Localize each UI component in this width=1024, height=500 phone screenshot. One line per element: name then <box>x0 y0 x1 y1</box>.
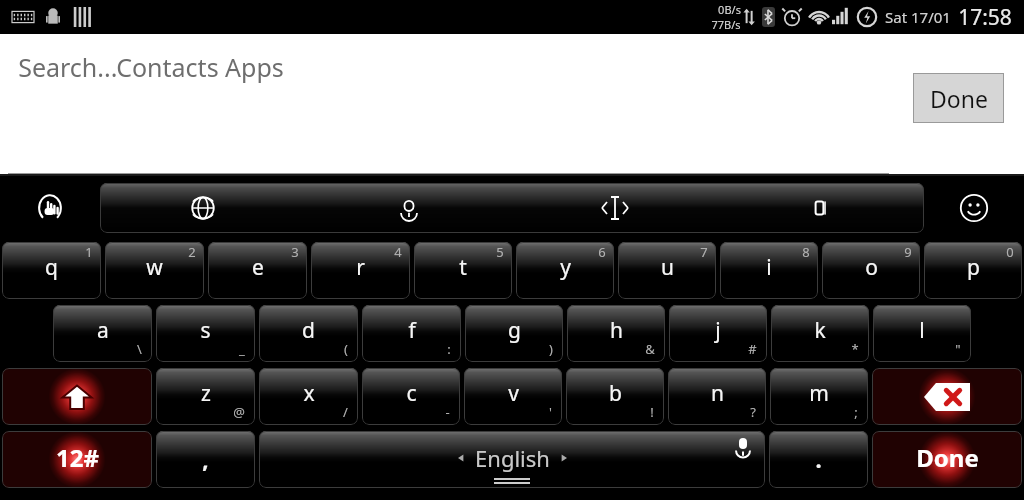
staticText: _ <box>239 340 245 358</box>
button[interactable]: e <box>208 242 307 299</box>
button[interactable]: Period <box>769 431 868 488</box>
staticText: & <box>645 340 655 358</box>
staticText: m <box>809 379 829 408</box>
button[interactable]: c <box>362 368 460 425</box>
button[interactable]: s <box>156 305 255 362</box>
staticText: i <box>766 253 772 282</box>
staticText: Search...Contacts Apps <box>18 50 284 84</box>
staticText: z <box>201 379 211 408</box>
staticText: : <box>447 340 451 358</box>
button[interactable]: u <box>618 242 716 299</box>
staticText: * <box>851 340 859 358</box>
button[interactable]: j <box>669 305 767 362</box>
staticText: ) <box>549 340 553 358</box>
button[interactable]: o <box>822 242 920 299</box>
button[interactable]: a <box>53 305 152 362</box>
staticText: q <box>45 253 58 282</box>
staticText: p <box>967 253 980 282</box>
button[interactable]: n <box>668 368 766 425</box>
button[interactable]: w <box>105 242 204 299</box>
button[interactable]: t <box>414 242 512 299</box>
staticText: n <box>711 379 724 408</box>
staticText: j <box>715 316 721 345</box>
staticText: Done <box>930 83 988 114</box>
button[interactable]: Done <box>913 73 1004 123</box>
staticText: w <box>146 253 163 282</box>
staticText: . <box>815 444 822 474</box>
button[interactable]: z <box>156 368 255 425</box>
staticText: b <box>609 379 622 408</box>
staticText: 1 <box>85 243 93 261</box>
staticText: x <box>303 379 315 408</box>
button[interactable]: p <box>924 242 1022 299</box>
button[interactable]: 12# <box>2 431 152 488</box>
staticText: u <box>661 253 674 282</box>
button[interactable]: f <box>362 305 461 362</box>
button[interactable]: Comma <box>156 431 255 488</box>
staticText: f <box>408 316 416 345</box>
button[interactable]: l <box>873 305 971 362</box>
staticText: l <box>919 316 925 345</box>
staticText: c <box>406 379 417 408</box>
staticText: 4 <box>394 243 402 261</box>
staticText: , <box>202 444 209 474</box>
staticText: - <box>445 403 450 421</box>
staticText: e <box>252 253 264 282</box>
button[interactable]: g <box>465 305 563 362</box>
staticText: 12# <box>56 441 99 474</box>
staticText: g <box>508 316 521 345</box>
staticText: t <box>459 253 467 282</box>
staticText: # <box>748 340 757 358</box>
button[interactable]: Emoji <box>924 176 1024 239</box>
staticText: 77B/s <box>711 17 741 32</box>
button[interactable]: x <box>259 368 358 425</box>
button[interactable]: i <box>720 242 818 299</box>
staticText: 5 <box>496 243 504 261</box>
staticText: o <box>865 253 878 282</box>
staticText: d <box>302 316 315 345</box>
staticText: Done <box>916 441 979 474</box>
button[interactable]: Clipboard <box>718 183 924 233</box>
staticText: 0 <box>1006 243 1014 261</box>
staticText: a <box>97 316 109 345</box>
button[interactable]: Move cursor <box>512 183 718 233</box>
staticText: h <box>610 316 623 345</box>
staticText: @ <box>233 403 245 421</box>
staticText: \ <box>137 340 142 358</box>
staticText: y <box>560 253 571 282</box>
button[interactable]: Change language <box>100 183 306 233</box>
button[interactable]: Shift <box>2 368 152 425</box>
button[interactable]: q <box>2 242 101 299</box>
staticText: ( <box>344 340 348 358</box>
button[interactable]: Gesture input <box>0 176 100 239</box>
button[interactable]: Space <box>259 431 765 488</box>
staticText: ; <box>854 403 858 421</box>
staticText: 8 <box>802 243 810 261</box>
button[interactable]: r <box>311 242 410 299</box>
staticText: 17:58 <box>958 3 1012 32</box>
staticText: 7 <box>700 243 708 261</box>
button[interactable]: y <box>516 242 614 299</box>
staticText: ? <box>750 403 756 421</box>
button[interactable]: k <box>771 305 869 362</box>
staticText: 0B/s <box>718 2 741 17</box>
button[interactable]: d <box>259 305 358 362</box>
staticText: 3 <box>291 243 299 261</box>
staticText: 9 <box>904 243 912 261</box>
staticText: k <box>814 316 826 345</box>
button[interactable]: v <box>464 368 562 425</box>
staticText: v <box>508 379 519 408</box>
staticText: English <box>475 443 550 473</box>
button[interactable]: Done <box>872 431 1022 488</box>
button[interactable]: Voice input <box>306 183 512 233</box>
staticText: / <box>343 403 348 421</box>
staticText: r <box>356 253 365 282</box>
button[interactable]: b <box>566 368 664 425</box>
button[interactable]: Backspace <box>872 368 1022 425</box>
staticText: 6 <box>598 243 606 261</box>
button[interactable]: h <box>567 305 665 362</box>
staticText: Sat 17/01 <box>885 7 951 27</box>
staticText: " <box>955 340 961 358</box>
staticText: s <box>200 316 211 345</box>
button[interactable]: m <box>770 368 868 425</box>
